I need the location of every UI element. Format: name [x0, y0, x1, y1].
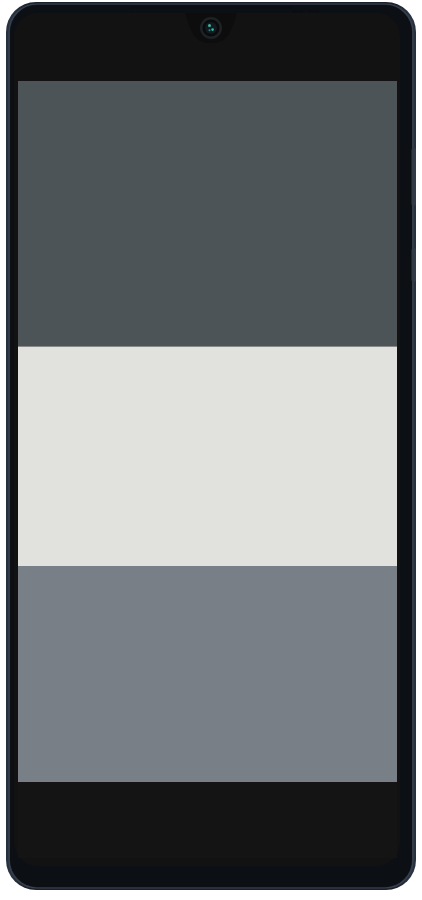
- button[interactable]: Content panel: [18, 346, 397, 565]
- button[interactable]: Volume buttons: [410, 148, 420, 206]
- button[interactable]: Power button: [410, 248, 420, 282]
